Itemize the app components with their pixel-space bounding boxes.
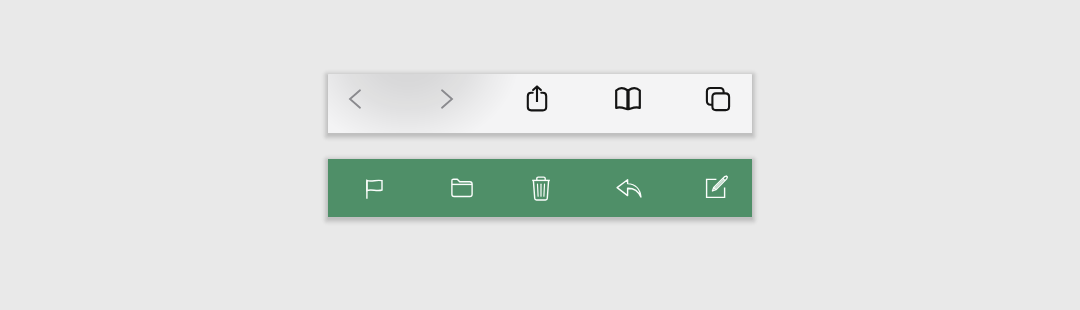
button[interactable]: Flag <box>351 166 395 210</box>
button[interactable]: Bookmarks <box>606 77 650 121</box>
button[interactable]: Tabs <box>696 77 740 121</box>
button[interactable]: Forward <box>425 77 469 121</box>
button[interactable]: Reply <box>607 166 651 210</box>
button[interactable]: Back <box>333 77 377 121</box>
button[interactable]: Share <box>515 77 559 121</box>
button[interactable]: Compose <box>694 166 738 210</box>
button[interactable]: Delete <box>519 166 563 210</box>
button[interactable]: Move to folder <box>440 166 484 210</box>
